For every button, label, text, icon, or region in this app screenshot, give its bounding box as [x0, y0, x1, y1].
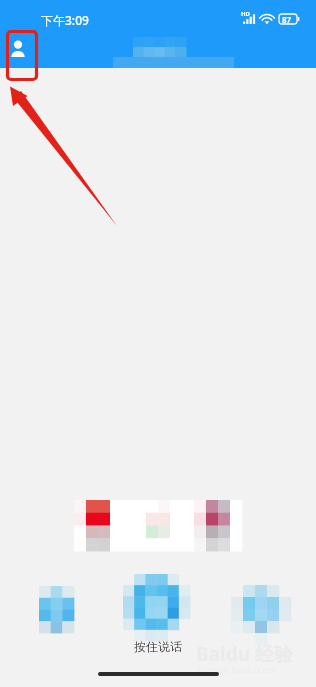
- button[interactable]: 按住说话: [124, 637, 192, 655]
- staticText: HD: [241, 10, 250, 18]
- button[interactable]: More: [231, 585, 291, 645]
- button[interactable]: Camera: [39, 586, 74, 633]
- staticText: 按住说话: [134, 639, 182, 654]
- staticText: 下午3:09: [41, 12, 89, 28]
- button[interactable]: Hold to talk: [123, 574, 190, 641]
- staticText: 87: [282, 14, 292, 25]
- button[interactable]: [74, 500, 242, 551]
- staticText: Baidu 经验: [196, 641, 293, 667]
- staticText: jingyan.baidu.com: [198, 663, 276, 675]
- button[interactable]: Profile: [4, 34, 32, 62]
